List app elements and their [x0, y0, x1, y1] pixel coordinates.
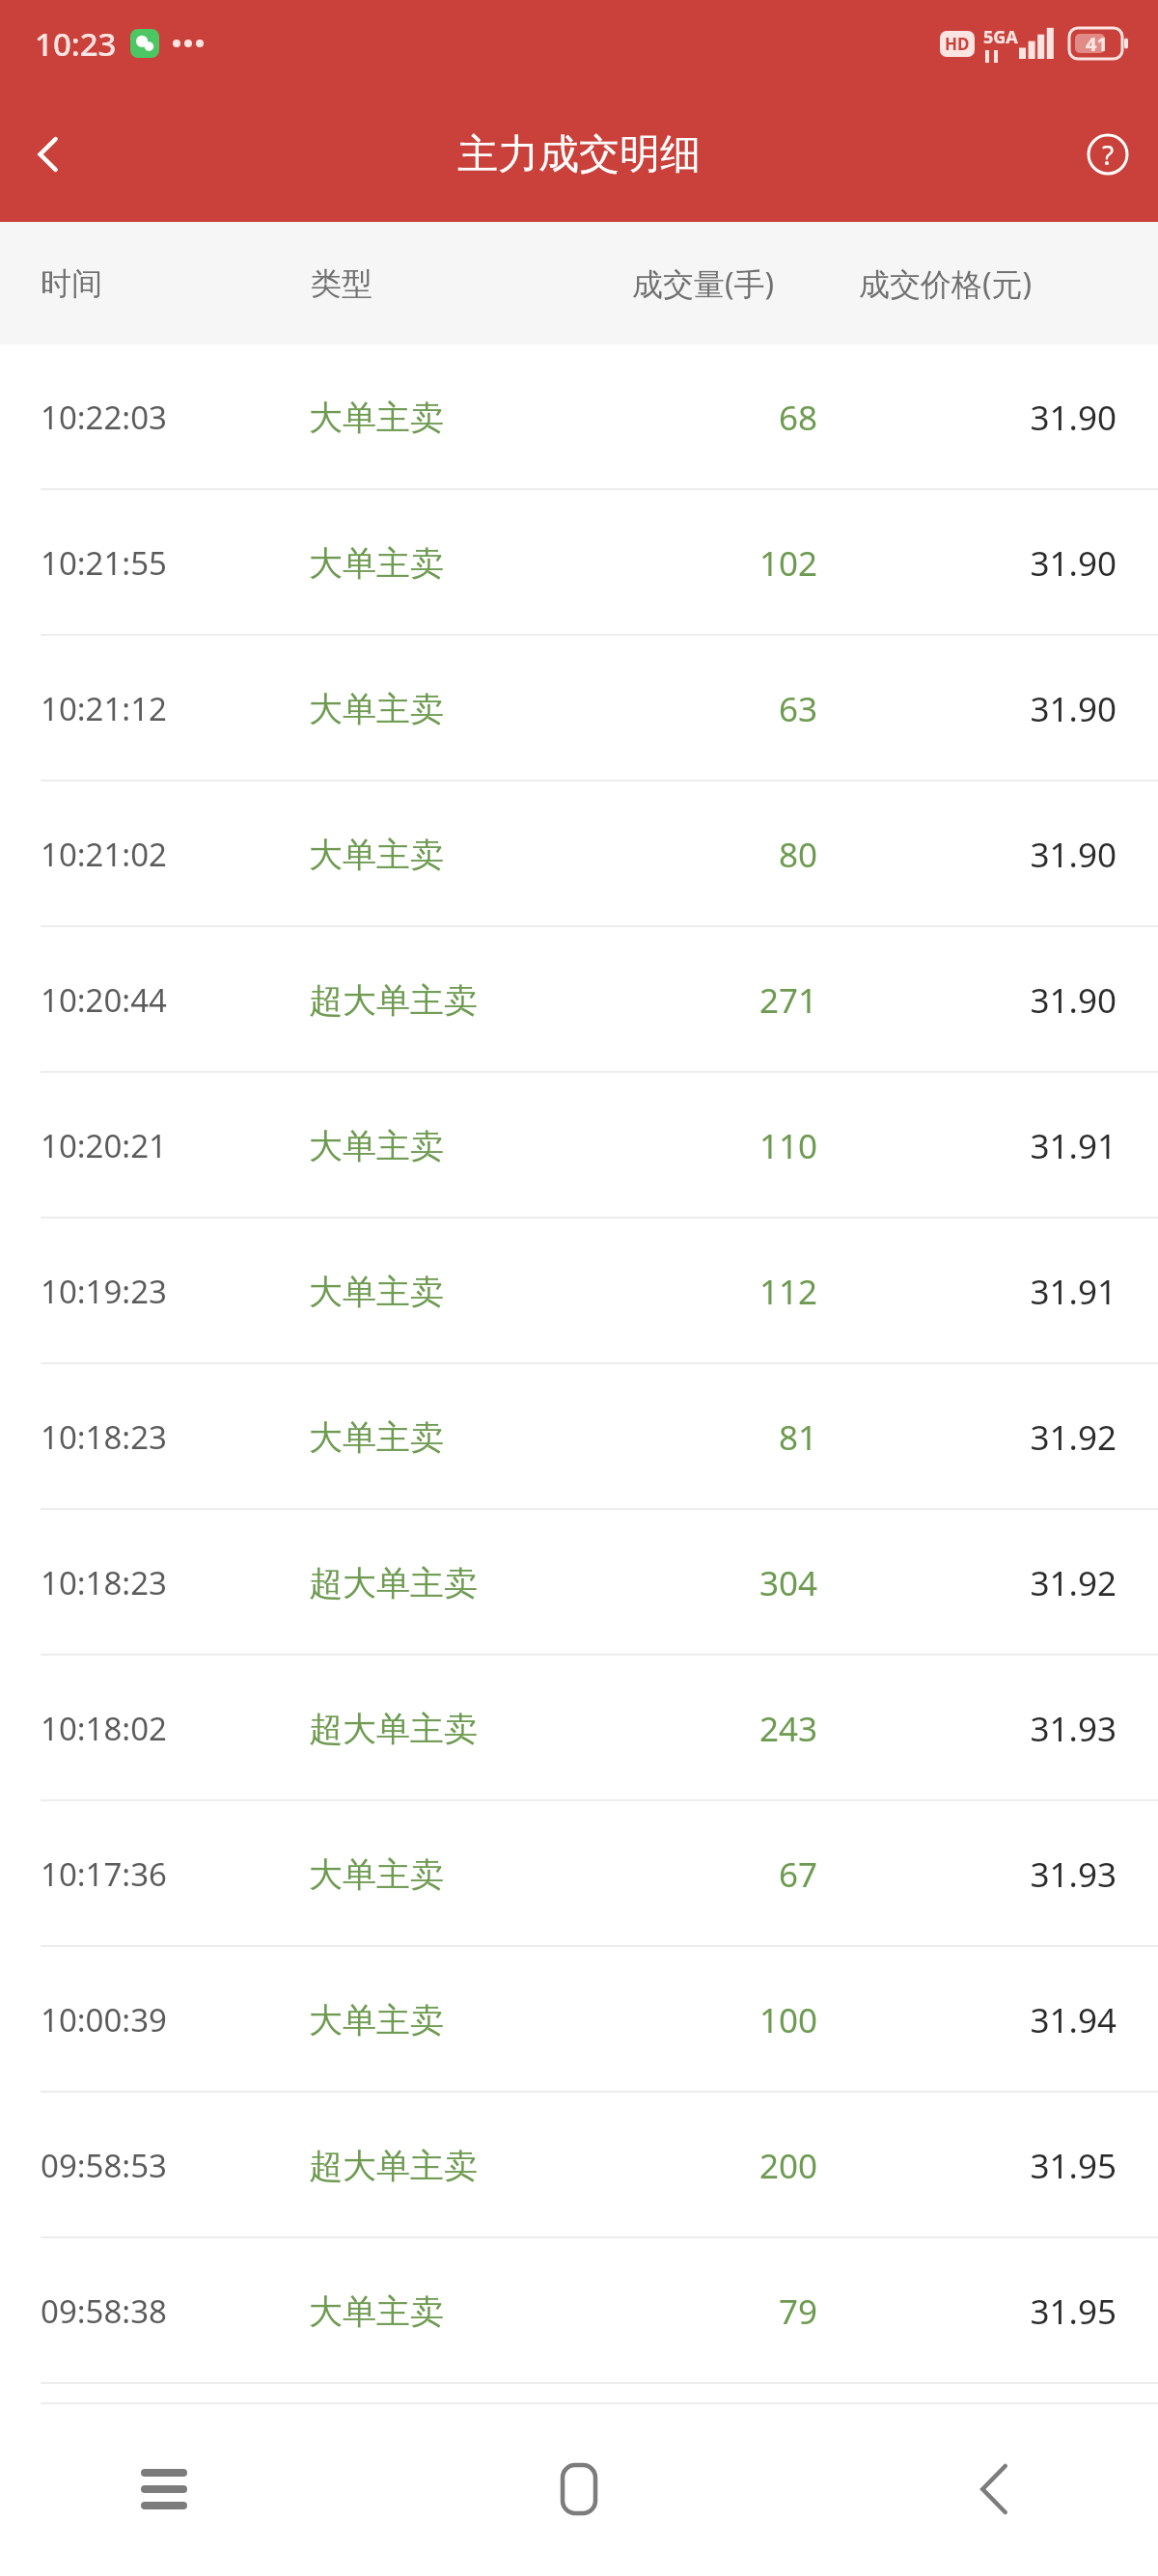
staticText: 41	[1086, 31, 1108, 57]
button[interactable]: Recent apps	[106, 2431, 222, 2547]
staticText: 10:21:02	[41, 833, 167, 876]
staticText: 10:00:39	[41, 1998, 167, 2042]
button[interactable]: 10:18:23	[0, 1364, 1158, 1510]
staticText: 时间	[41, 264, 102, 303]
staticText: 63	[579, 686, 817, 732]
button[interactable]: Help	[1058, 104, 1158, 205]
staticText: 主力成交明细	[457, 129, 701, 180]
staticText: 10:19:23	[41, 1270, 167, 1313]
staticText: 67	[579, 1851, 817, 1898]
staticText: 10:18:23	[41, 1415, 167, 1459]
staticText: 31.95	[868, 2143, 1117, 2189]
staticText: 10:17:36	[41, 1852, 167, 1896]
staticText: 10:21:12	[41, 687, 167, 730]
staticText: HD	[945, 33, 970, 55]
staticText: 31.91	[868, 1123, 1117, 1169]
staticText: 31.90	[868, 540, 1117, 587]
staticText: 81	[579, 1414, 817, 1461]
staticText: 类型	[311, 264, 372, 303]
staticText: 31.92	[868, 1414, 1117, 1461]
staticText: 成交价格(元)	[859, 262, 1033, 305]
staticText: 10:18:23	[41, 1561, 167, 1604]
staticText: 79	[579, 2288, 817, 2335]
staticText: 5GA	[983, 25, 1018, 49]
button[interactable]: 10:21:55	[0, 490, 1158, 636]
staticText: 大单主卖	[309, 1999, 444, 2042]
button[interactable]: 10:21:02	[0, 781, 1158, 927]
staticText: 200	[579, 2143, 817, 2189]
staticText: 304	[579, 1560, 817, 1606]
staticText: 超大单主卖	[309, 2145, 478, 2187]
staticText: 大单主卖	[309, 2290, 444, 2333]
staticText: 243	[579, 1706, 817, 1752]
staticText: 大单主卖	[309, 834, 444, 876]
button[interactable]: 10:17:36	[0, 1801, 1158, 1947]
staticText: 31.91	[868, 1269, 1117, 1315]
staticText: 大单主卖	[309, 1416, 444, 1459]
staticText: 10:23	[35, 22, 117, 66]
button[interactable]: 10:18:23	[0, 1510, 1158, 1656]
button[interactable]: 10:21:12	[0, 636, 1158, 781]
button[interactable]: 10:18:02	[0, 1656, 1158, 1801]
staticText: 110	[579, 1123, 817, 1169]
staticText: 10:20:21	[41, 1124, 167, 1167]
staticText: 31.93	[868, 1851, 1117, 1898]
staticText: 超大单主卖	[309, 1708, 478, 1750]
staticText: 大单主卖	[309, 688, 444, 730]
staticText: 10:21:55	[41, 541, 167, 585]
staticText: 大单主卖	[309, 1125, 444, 1167]
button[interactable]: 10:00:39	[0, 1947, 1158, 2093]
staticText: 31.92	[868, 1560, 1117, 1606]
staticText: 10:18:02	[41, 1707, 167, 1750]
staticText: 大单主卖	[309, 1853, 444, 1896]
staticText: 成交量(手)	[632, 262, 775, 305]
staticText: 31.94	[868, 1997, 1117, 2043]
button[interactable]: 10:22:03	[0, 344, 1158, 490]
button[interactable]: 10:20:21	[0, 1073, 1158, 1219]
staticText: 10:22:03	[41, 396, 167, 439]
staticText: 102	[579, 540, 817, 587]
button[interactable]: 09:58:38	[0, 2238, 1158, 2384]
button[interactable]: 09:58:53	[0, 2093, 1158, 2238]
staticText: 31.95	[868, 2288, 1117, 2335]
button[interactable]: Back	[936, 2431, 1052, 2547]
staticText: 31.90	[868, 832, 1117, 878]
staticText: 大单主卖	[309, 542, 444, 585]
staticText: 超大单主卖	[309, 979, 478, 1022]
staticText: 100	[579, 1997, 817, 2043]
staticText: 31.90	[868, 977, 1117, 1024]
staticText: 大单主卖	[309, 1271, 444, 1313]
staticText: ?	[1102, 136, 1115, 173]
staticText: 271	[579, 977, 817, 1024]
staticText: 大单主卖	[309, 397, 444, 439]
staticText: 80	[579, 832, 817, 878]
staticText: 68	[579, 395, 817, 441]
button[interactable]: 10:19:23	[0, 1219, 1158, 1364]
staticText: 112	[579, 1269, 817, 1315]
staticText: 09:58:38	[41, 2289, 167, 2333]
button[interactable]: 10:20:44	[0, 927, 1158, 1073]
staticText: 31.93	[868, 1706, 1117, 1752]
button[interactable]: Home	[521, 2431, 637, 2547]
staticText: 超大单主卖	[309, 1562, 478, 1604]
staticText: 31.90	[868, 686, 1117, 732]
button[interactable]: Back	[0, 106, 96, 203]
staticText: 09:58:53	[41, 2144, 167, 2187]
staticText: 31.90	[868, 395, 1117, 441]
staticText: 10:20:44	[41, 978, 167, 1022]
